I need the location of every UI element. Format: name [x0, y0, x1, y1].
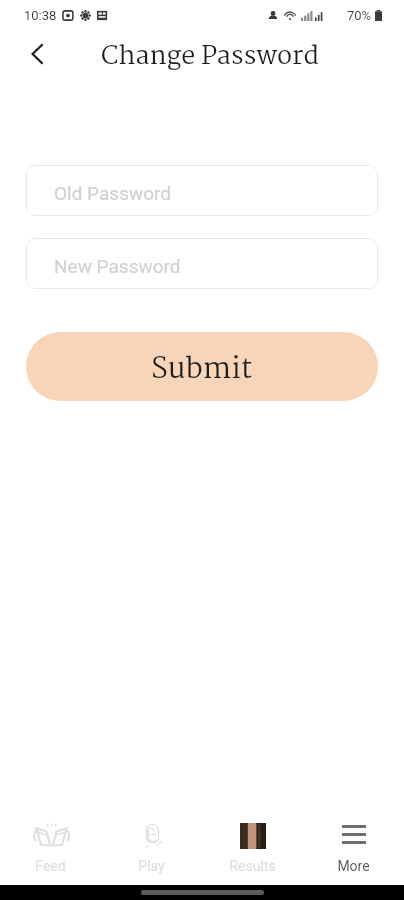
button[interactable]: Submit: [26, 332, 378, 401]
other: Play: [143, 821, 162, 848]
staticText: 70%: [347, 8, 372, 23]
button[interactable]: Play: [101, 815, 202, 885]
staticText: Results: [229, 858, 276, 874]
button[interactable]: Back: [15, 32, 59, 76]
button[interactable]: More: [303, 815, 404, 885]
staticText: Submit: [151, 346, 253, 393]
button[interactable]: New Password: [26, 238, 378, 289]
staticText: Old Password: [54, 182, 172, 204]
button[interactable]: Feed: [0, 815, 101, 885]
staticText: More: [337, 858, 370, 874]
button[interactable]: Old Password: [26, 165, 378, 216]
staticText: New Password: [54, 255, 181, 277]
staticText: Change Password: [101, 36, 319, 78]
staticText: 10:38: [24, 8, 57, 23]
staticText: Play: [138, 858, 165, 874]
button[interactable]: Results: [202, 815, 303, 885]
other: Results: [240, 823, 266, 849]
other: More: [342, 825, 366, 844]
other: Feed: [35, 824, 68, 846]
staticText: Feed: [35, 858, 66, 874]
